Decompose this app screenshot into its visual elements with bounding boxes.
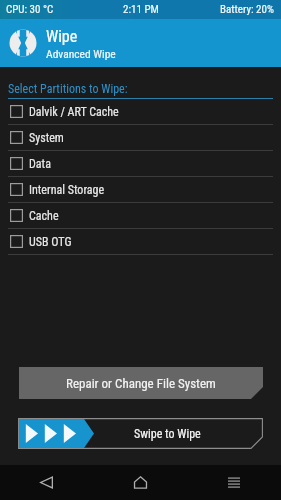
button[interactable]: Internal Storage [0,177,281,203]
button[interactable]: Data [0,151,281,177]
button[interactable]: Swipe to Wipe [18,418,263,449]
staticText: CPU: 30 °C [6,3,54,16]
button[interactable]: Back [0,465,93,500]
button[interactable]: Home [93,465,187,500]
button[interactable]: Recent apps [187,465,281,500]
staticText: Swipe to Wipe [134,427,201,441]
staticText: Select Partitions to Wipe: [8,82,128,96]
staticText: Data [29,157,51,171]
staticText: 2:11 PM [123,3,159,16]
staticText: Internal Storage [29,183,105,197]
staticText: Wipe [46,27,78,46]
staticText: Battery: 20% [220,3,274,16]
staticText: Advanced Wipe [46,47,116,60]
button[interactable]: Wipe - Advanced Wipe [0,19,281,67]
staticText: USB OTG [29,235,72,249]
staticText: System [29,131,64,145]
button[interactable]: Cache [0,203,281,229]
staticText: Dalvik / ART Cache [29,105,119,119]
button[interactable]: USB OTG [0,229,281,255]
button[interactable]: Dalvik / ART Cache [0,99,281,125]
button[interactable]: System [0,125,281,151]
button[interactable]: Repair or Change File System [19,367,263,399]
staticText: Repair or Change File System [66,376,216,391]
staticText: Cache [29,209,59,223]
